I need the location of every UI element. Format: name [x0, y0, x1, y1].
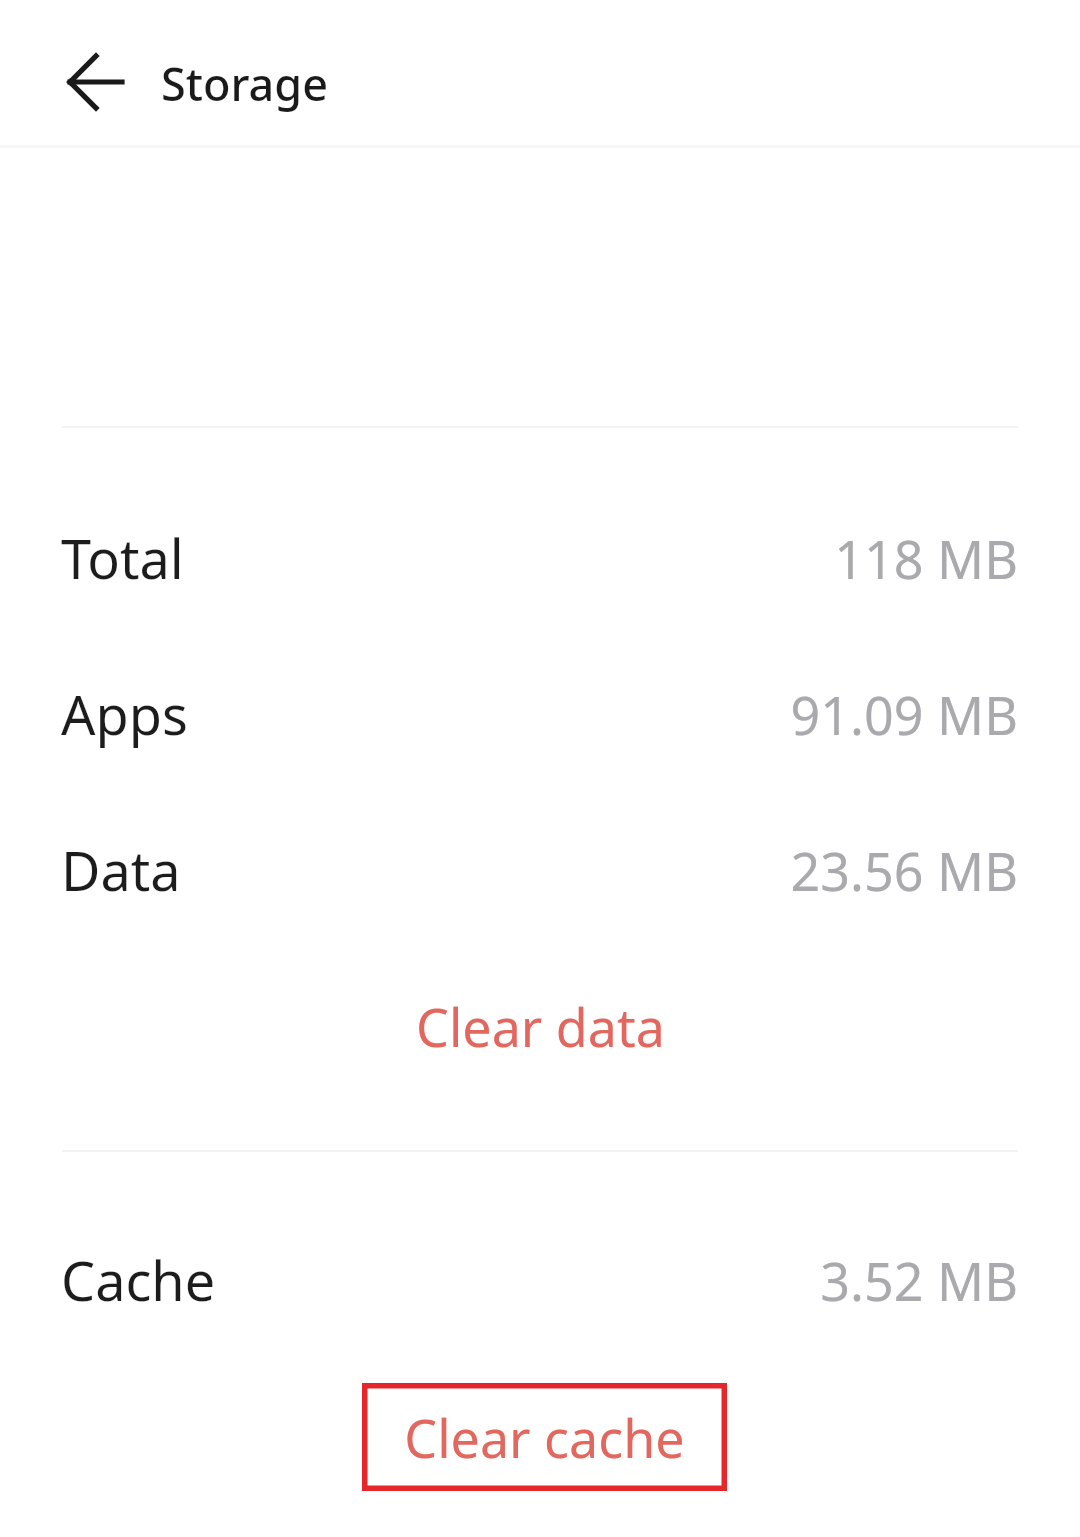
- button[interactable]: Cache: [0, 1225, 1080, 1335]
- staticText: Apps: [61, 677, 188, 751]
- staticText: Total: [61, 521, 184, 595]
- staticText: 91.09 MB: [790, 679, 1018, 750]
- staticText: Storage: [161, 53, 329, 114]
- staticText: Clear cache: [404, 1402, 685, 1473]
- staticText: 23.56 MB: [790, 835, 1018, 906]
- button[interactable]: Apps: [0, 659, 1080, 769]
- button[interactable]: Total: [0, 503, 1080, 613]
- staticText: Data: [61, 833, 181, 907]
- staticText: Clear data: [416, 991, 665, 1062]
- staticText: 3.52 MB: [820, 1245, 1018, 1316]
- button[interactable]: Clear cache: [362, 1383, 727, 1491]
- button[interactable]: Clear data: [0, 974, 1080, 1078]
- staticText: Cache: [61, 1243, 216, 1317]
- button[interactable]: Back: [48, 34, 144, 130]
- staticText: 118 MB: [834, 523, 1018, 594]
- button[interactable]: Data: [0, 815, 1080, 925]
